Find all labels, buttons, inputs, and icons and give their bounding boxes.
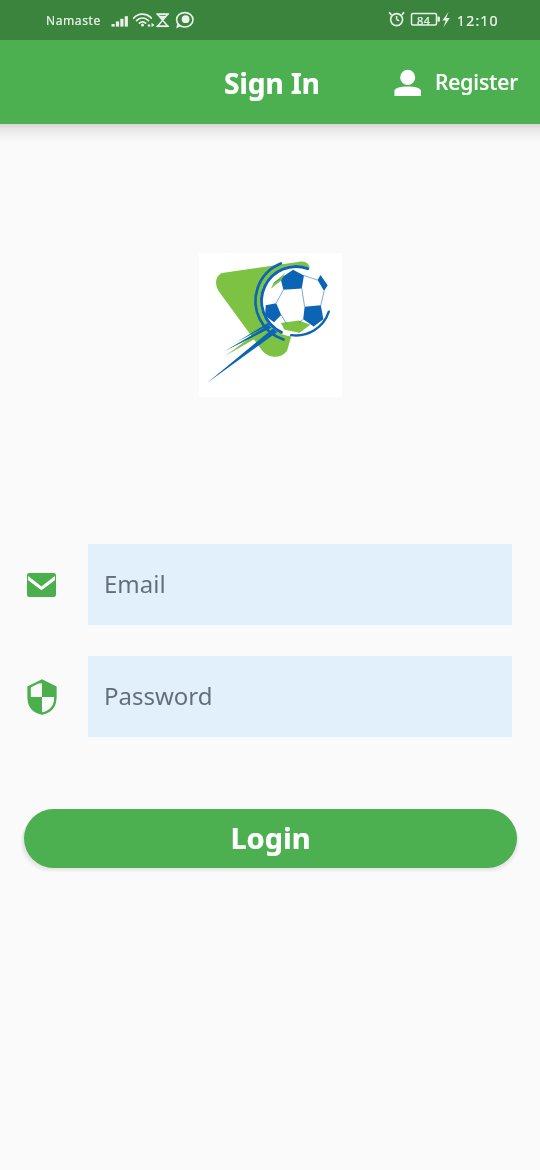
button[interactable]: Email — [88, 544, 512, 625]
staticText: Email — [104, 567, 166, 600]
staticText: Password — [104, 679, 213, 712]
staticText: Login — [230, 818, 311, 857]
other: Password — [28, 680, 56, 714]
button[interactable]: Register — [382, 54, 535, 111]
staticText: Register — [435, 68, 519, 97]
other: Register — [390, 70, 424, 96]
staticText: 84 — [417, 13, 431, 28]
button[interactable]: Login — [24, 809, 517, 868]
other: Email — [27, 573, 56, 597]
staticText: Sign In — [224, 64, 321, 102]
button[interactable]: Password — [88, 656, 512, 737]
staticText: Namaste — [46, 12, 101, 28]
staticText: 12:10 — [457, 11, 499, 30]
